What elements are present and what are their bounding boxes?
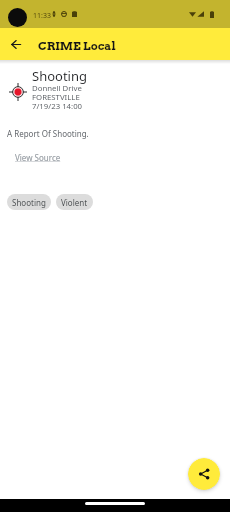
staticText: Shooting bbox=[12, 197, 46, 208]
staticText: CRIME Local bbox=[38, 39, 116, 53]
button[interactable]: Shooting bbox=[7, 194, 51, 210]
staticText: Violent bbox=[61, 197, 88, 208]
staticText: Donnell Drive bbox=[32, 83, 82, 94]
staticText: 11:33 bbox=[33, 11, 51, 21]
button[interactable]: View Source bbox=[15, 152, 61, 163]
staticText: 7/19/23 14:00 bbox=[32, 101, 83, 112]
button[interactable]: Violent bbox=[56, 194, 93, 210]
staticText: A Report Of Shooting. bbox=[7, 128, 89, 139]
staticText: Shooting bbox=[32, 67, 87, 85]
button[interactable]: Back bbox=[5, 33, 27, 55]
staticText: FORESTVILLE bbox=[32, 92, 80, 103]
button[interactable]: Share bbox=[188, 458, 220, 490]
